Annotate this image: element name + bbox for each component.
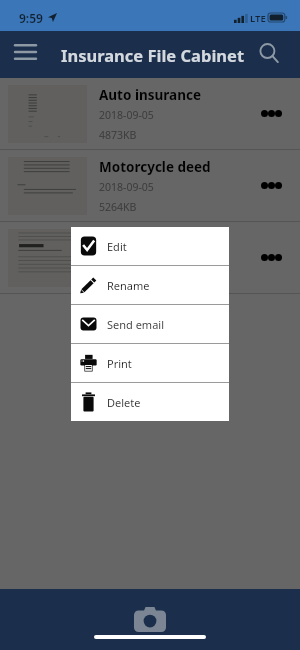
button[interactable]: More options <box>242 78 300 149</box>
staticText: 2018-09-05 <box>99 180 154 194</box>
staticText: Motorcycle deed <box>99 158 211 176</box>
staticText: 2018-09-05 <box>99 108 154 122</box>
staticText: Send email <box>107 317 165 332</box>
staticText: 5264KB <box>99 200 137 214</box>
staticText: 1120KB <box>99 272 137 286</box>
staticText: Rename <box>107 278 150 293</box>
staticText: Auto insurance <box>99 86 201 104</box>
staticText: Insurance File Cabinet <box>61 44 245 66</box>
staticText: Delete <box>107 395 141 410</box>
staticText: 2018-09-05 <box>99 252 154 266</box>
button[interactable]: Delete <box>71 383 229 421</box>
staticText: LTE <box>250 12 266 25</box>
button[interactable]: More options <box>242 150 300 221</box>
button[interactable]: Print <box>71 344 229 382</box>
button[interactable]: Auto insurance <box>0 78 300 150</box>
staticText: Edit <box>107 239 127 254</box>
button[interactable]: Camera <box>132 601 168 637</box>
staticText: 9:59 <box>19 10 43 26</box>
staticText: 4873KB <box>99 128 137 142</box>
button[interactable]: Open navigation menu <box>3 30 47 74</box>
button[interactable]: Motorcycle deed <box>0 150 300 222</box>
button[interactable]: More options <box>242 222 300 293</box>
button[interactable]: Folder33 <box>0 222 300 294</box>
staticText: Folder33 <box>99 230 157 248</box>
button[interactable]: Rename <box>71 266 229 304</box>
button[interactable]: Search <box>249 33 289 73</box>
button[interactable]: Edit <box>71 227 229 265</box>
staticText: Print <box>107 356 132 371</box>
button[interactable]: Send email <box>71 305 229 343</box>
